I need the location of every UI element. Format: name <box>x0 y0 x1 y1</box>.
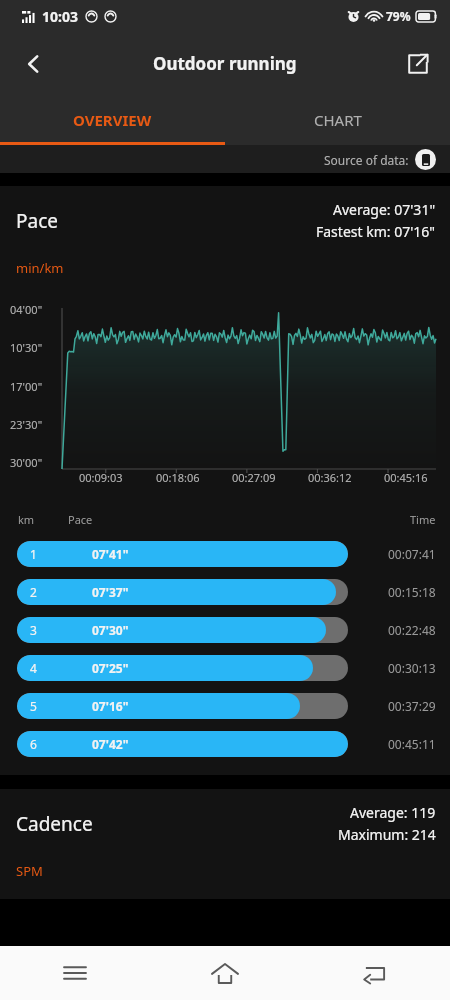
button[interactable]: 4 <box>0 655 450 681</box>
staticText: 2 <box>30 584 37 600</box>
staticText: Cadence <box>16 811 93 837</box>
staticText: 00:45:11 <box>388 736 436 752</box>
button[interactable]: Source of data: <box>324 149 436 170</box>
button[interactable]: 6 <box>0 731 450 757</box>
staticText: 00:36:12 <box>308 470 352 485</box>
button[interactable]: Share <box>394 40 442 88</box>
staticText: 07'30" <box>92 622 129 638</box>
button[interactable]: OVERVIEW <box>0 95 225 145</box>
staticText: 5 <box>30 698 37 714</box>
button[interactable]: 5 <box>0 693 450 719</box>
staticText: 07'25" <box>92 660 129 676</box>
staticText: Average: 07'31" <box>333 200 436 219</box>
staticText: 1 <box>30 546 37 562</box>
staticText: 17'00" <box>10 379 43 394</box>
staticText: 4 <box>30 660 37 676</box>
staticText: 10'30" <box>10 340 43 355</box>
staticText: 00:07:41 <box>388 546 436 562</box>
staticText: Outdoor running <box>153 52 297 75</box>
staticText: Source of data: <box>324 152 409 168</box>
staticText: SPM <box>16 862 43 880</box>
staticText: 3 <box>30 622 37 638</box>
staticText: 23'30" <box>10 417 43 432</box>
button[interactable]: Back <box>300 946 450 1000</box>
staticText: OVERVIEW <box>73 110 152 130</box>
staticText: 00:45:16 <box>384 470 428 485</box>
staticText: min/km <box>16 259 64 277</box>
staticText: 00:22:48 <box>388 622 436 638</box>
staticText: Fastest km: 07'16" <box>316 222 436 241</box>
staticText: 30'00" <box>10 455 43 470</box>
button[interactable]: Back <box>10 40 58 88</box>
staticText: Average: 119 <box>350 803 436 822</box>
staticText: 04'00" <box>10 302 43 317</box>
button[interactable]: Recent apps <box>0 946 150 1000</box>
button[interactable]: 2 <box>0 579 450 605</box>
staticText: 07'41" <box>92 546 129 562</box>
button[interactable]: CHART <box>225 95 450 145</box>
staticText: 00:30:13 <box>388 660 436 676</box>
staticText: 00:18:06 <box>156 470 200 485</box>
staticText: 6 <box>30 736 37 752</box>
staticText: km <box>18 512 35 527</box>
staticText: 10:03 <box>42 7 78 26</box>
staticText: Maximum: 214 <box>338 825 436 844</box>
button[interactable]: Home <box>150 946 300 1000</box>
staticText: 00:15:18 <box>388 584 436 600</box>
staticText: 00:27:09 <box>232 470 276 485</box>
button[interactable]: 1 <box>0 541 450 567</box>
staticText: 79% <box>386 8 411 24</box>
staticText: 07'42" <box>92 736 129 752</box>
staticText: Time <box>410 512 436 527</box>
staticText: 00:09:03 <box>79 470 123 485</box>
staticText: Pace <box>16 208 58 234</box>
staticText: Pace <box>68 512 93 527</box>
staticText: 07'37" <box>92 584 129 600</box>
staticText: CHART <box>314 110 362 130</box>
staticText: 07'16" <box>92 698 129 714</box>
staticText: 00:37:29 <box>388 698 436 714</box>
button[interactable]: 3 <box>0 617 450 643</box>
